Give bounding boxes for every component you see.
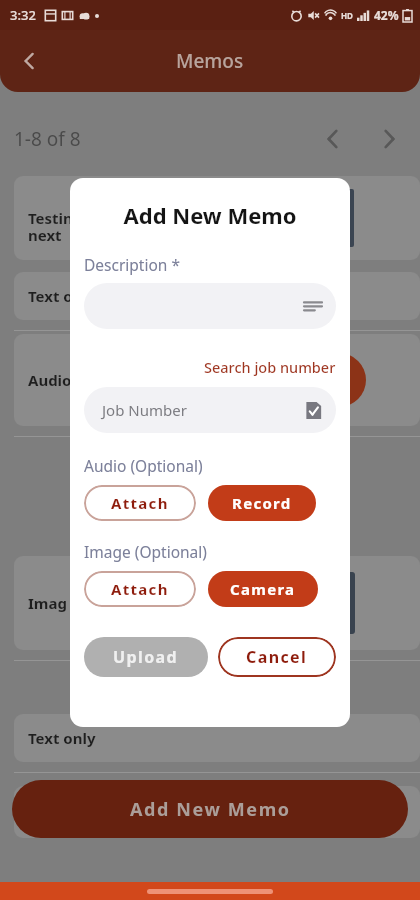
button[interactable]: Text o — [14, 272, 420, 320]
staticText: Testing — [28, 208, 83, 228]
button[interactable] — [84, 283, 336, 329]
staticText: 1-8 of 8 — [14, 126, 81, 152]
staticText: Image (Optional) — [84, 541, 207, 562]
staticText: Audio — [28, 370, 72, 390]
staticText: Record — [232, 493, 292, 513]
button[interactable]: Back — [6, 37, 54, 85]
staticText: Cancel — [246, 646, 308, 668]
button[interactable]: Next page — [372, 122, 406, 156]
button[interactable]: Previous page — [316, 122, 350, 156]
button[interactable]: Camera — [208, 571, 318, 607]
staticText: Text o — [28, 286, 73, 306]
button[interactable]: Search job number — [84, 357, 336, 377]
staticText: Add New Memo — [130, 797, 291, 822]
staticText: HD — [341, 10, 353, 21]
button[interactable]: Audio — [14, 334, 420, 426]
staticText: next — [28, 225, 62, 245]
button[interactable]: Attach — [84, 485, 196, 521]
staticText: Job Number — [102, 400, 187, 420]
button[interactable]: Add New Memo — [12, 780, 408, 838]
button[interactable]: Attach — [84, 571, 196, 607]
staticText: Audio (Optional) — [84, 455, 203, 476]
staticText: Attach — [111, 493, 169, 513]
staticText: Attach — [111, 579, 169, 599]
button[interactable]: Imag — [14, 556, 420, 650]
staticText: Text only — [28, 728, 96, 748]
button[interactable]: test — [14, 786, 420, 838]
button[interactable]: Job Number — [84, 387, 336, 433]
staticText: Search job number — [204, 357, 336, 377]
button[interactable]: Upload — [84, 637, 208, 677]
button[interactable]: Record — [208, 485, 316, 521]
button[interactable]: Testing — [14, 176, 420, 260]
staticText: Imag — [28, 593, 67, 613]
staticText: 3:32 — [10, 6, 36, 24]
button[interactable]: Text only — [14, 714, 420, 762]
staticText: Camera — [230, 579, 296, 599]
staticText: Upload — [113, 646, 179, 668]
staticText: Description * — [84, 254, 180, 275]
button[interactable]: Cancel — [218, 637, 336, 677]
staticText: Memos — [176, 48, 244, 74]
staticText: 42% — [374, 7, 399, 23]
staticText: Add New Memo — [84, 200, 336, 230]
